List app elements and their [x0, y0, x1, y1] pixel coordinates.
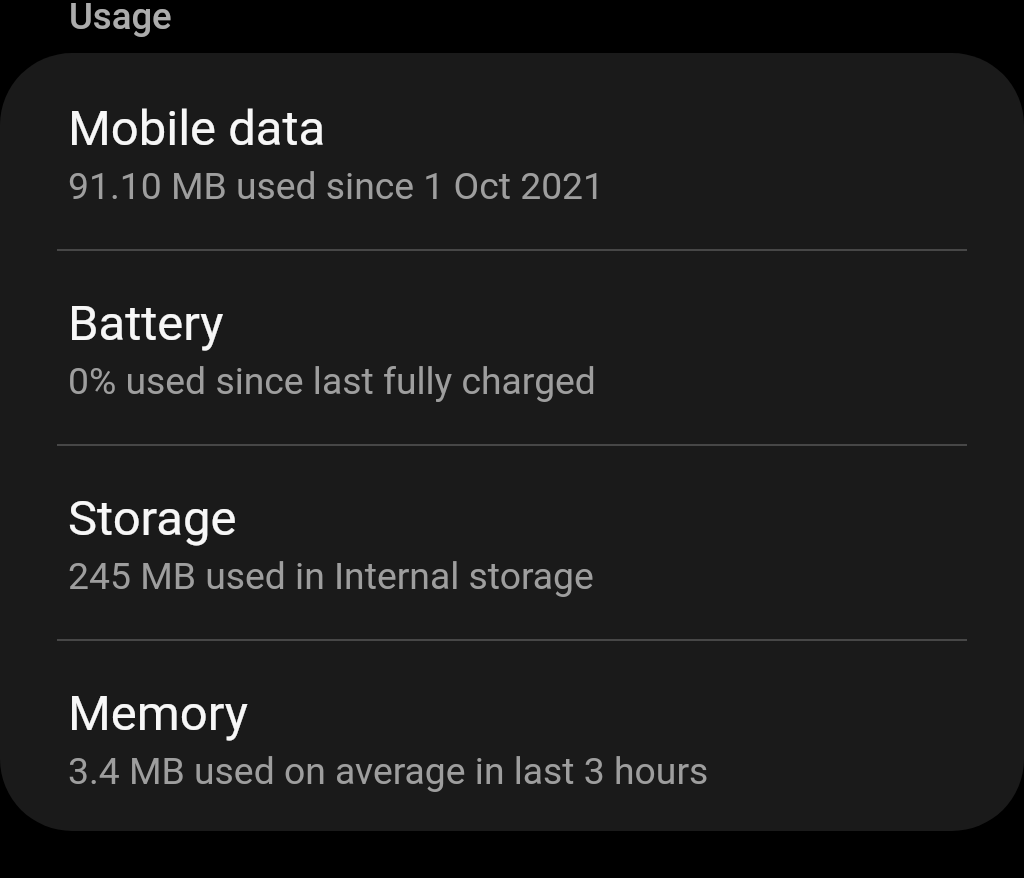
- staticText: Mobile data: [68, 100, 326, 157]
- staticText: 3.4 MB used on average in last 3 hours: [68, 749, 709, 793]
- staticText: Usage: [69, 0, 172, 38]
- staticText: Battery: [68, 295, 224, 352]
- button[interactable]: Storage: [0, 443, 1024, 638]
- staticText: 91.10 MB used since 1 Oct 2021: [68, 164, 605, 208]
- staticText: 0% used since last fully charged: [68, 359, 596, 403]
- staticText: Storage: [68, 490, 237, 547]
- button[interactable]: Memory: [0, 638, 1024, 831]
- staticText: 245 MB used in Internal storage: [68, 554, 594, 598]
- staticText: Memory: [68, 685, 248, 742]
- button[interactable]: Mobile data: [0, 53, 1024, 248]
- button[interactable]: Battery: [0, 248, 1024, 443]
